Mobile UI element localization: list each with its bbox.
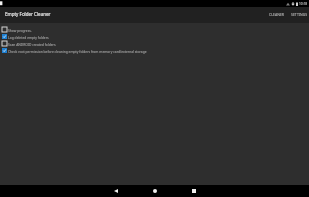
staticText: SETTINGS [291,12,308,17]
staticText: Show progress. [8,28,32,32]
button[interactable]: Log deleted empty folders [0,34,309,39]
button[interactable]: Check root permission before cleaning em… [0,48,309,53]
staticText: Scan ANDROID created folders [8,42,56,46]
button[interactable]: Show progress. [0,27,309,32]
staticText: 10:18 [299,2,308,6]
staticText: Empty Folder Cleaner [5,11,51,17]
button[interactable]: SETTINGS [288,8,309,21]
button[interactable]: Recent apps [184,185,204,197]
button[interactable]: Back [106,185,126,197]
button[interactable]: Home [145,185,165,197]
staticText: Log deleted empty folders [8,35,49,39]
button[interactable]: Scan ANDROID created folders [0,41,309,46]
staticText: Check root permission before cleaning em… [8,49,147,53]
staticText: CLEANER [269,12,285,17]
button[interactable]: CLEANER [264,8,288,21]
